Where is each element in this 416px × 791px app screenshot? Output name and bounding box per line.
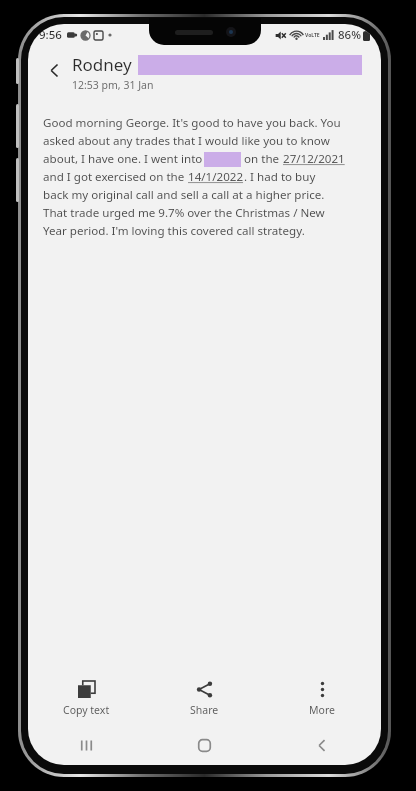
button[interactable]: More (263, 673, 381, 725)
staticText: Share (190, 703, 219, 717)
staticText: asked about any trades that I would like… (43, 133, 330, 149)
staticText: VoLTE (305, 32, 320, 39)
staticText: back my original call and sell a call at… (43, 187, 325, 203)
button[interactable]: Home (145, 725, 263, 765)
staticText: . I had to buy (244, 169, 316, 185)
staticText: Year period. I'm loving this covered cal… (43, 223, 305, 239)
staticText: Rodney (72, 53, 132, 76)
staticText: 86% (338, 27, 361, 43)
staticText: 27/12/2021 (283, 151, 345, 167)
button[interactable]: Share (145, 673, 263, 725)
staticText: 14/1/2022 (188, 169, 244, 185)
button[interactable]: Back (36, 52, 72, 88)
staticText: That trade urged me 9.7% over the Christ… (43, 205, 325, 221)
button[interactable]: Copy text (28, 673, 145, 725)
staticText: 9:56 (39, 27, 62, 43)
staticText: on the (241, 151, 283, 167)
button[interactable]: Back (263, 725, 381, 765)
staticText: about, I have one. I went into (43, 151, 203, 167)
staticText: Copy text (63, 703, 110, 717)
button[interactable]: Recents (28, 725, 145, 765)
staticText: Good morning George. It's good to have y… (43, 115, 341, 131)
staticText: 12:53 pm, 31 Jan (72, 78, 154, 92)
staticText: and I got exercised on the (43, 169, 188, 185)
staticText: More (309, 703, 335, 717)
